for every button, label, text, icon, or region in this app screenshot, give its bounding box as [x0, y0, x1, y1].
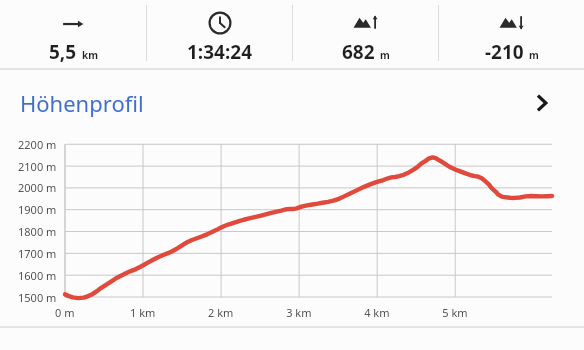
staticText: m	[529, 48, 539, 62]
other: Distance	[60, 10, 86, 36]
staticText: 682	[342, 39, 375, 65]
staticText: km	[82, 48, 98, 62]
staticText: 1:34:24	[187, 39, 253, 65]
staticText: m	[380, 48, 390, 62]
other: Duration	[207, 10, 233, 36]
staticText: -210	[485, 39, 524, 65]
other: Ascent	[353, 10, 379, 36]
staticText: 5,5	[49, 39, 77, 65]
button[interactable]: Descent 210 metres	[439, 0, 584, 70]
button[interactable]: Distance 5,5 kilometres	[0, 0, 146, 70]
button[interactable]: Höhenprofil	[0, 70, 584, 136]
button[interactable]: Duration 1 hour 34 minutes 24 seconds	[147, 0, 292, 70]
staticText: Höhenprofil	[20, 88, 144, 118]
other: Open elevation profile	[530, 91, 554, 115]
other: Descent	[499, 10, 525, 36]
button[interactable]: Ascent 682 metres	[293, 0, 438, 70]
